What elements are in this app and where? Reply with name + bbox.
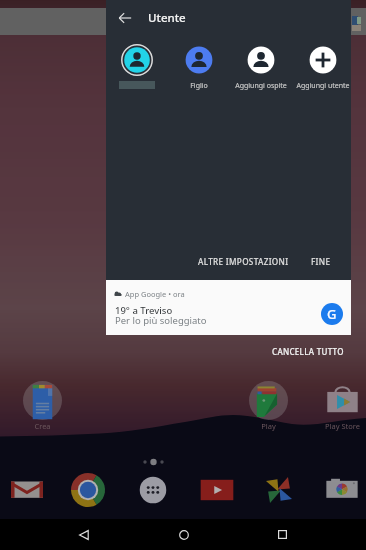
button[interactable]: ALTRE IMPOSTAZIONI	[192, 251, 295, 272]
button[interactable]: YouTube	[198, 471, 236, 509]
button[interactable]: CANCELLA TUTTO	[268, 343, 348, 360]
button[interactable]: Play Store	[316, 381, 366, 431]
button[interactable]: Recents	[267, 519, 298, 550]
staticText: Play Store	[325, 421, 360, 431]
button[interactable]: Crea	[16, 381, 68, 431]
staticText: G	[327, 305, 337, 323]
staticText: FINE	[311, 256, 331, 267]
button[interactable]: Figlio	[170, 44, 228, 91]
button[interactable]: FINE	[305, 251, 337, 272]
button[interactable]: Play	[242, 381, 294, 431]
button[interactable]: Camera	[323, 471, 361, 509]
button[interactable]: Back	[68, 519, 99, 550]
button[interactable]: Aggiungi utente	[294, 44, 352, 91]
staticText: 19° a Treviso	[115, 304, 173, 317]
staticText: CANCELLA TUTTO	[272, 346, 344, 357]
button[interactable]: Aggiungi ospite	[232, 44, 290, 91]
staticText: Crea	[34, 421, 51, 431]
staticText: Utente	[148, 10, 186, 26]
staticText: Aggiungi utente	[296, 81, 350, 91]
button[interactable]: Back	[111, 4, 139, 32]
button[interactable]: All apps	[134, 471, 172, 509]
staticText: App Google • ora	[125, 289, 185, 299]
staticText: Play	[261, 421, 276, 431]
button[interactable]: G	[321, 303, 343, 325]
button[interactable]: Home	[168, 519, 199, 550]
staticText: Figlio	[190, 81, 208, 91]
button[interactable]: Photos	[260, 471, 298, 509]
staticText: ALTRE IMPOSTAZIONI	[198, 256, 289, 267]
button[interactable]	[108, 44, 166, 89]
button[interactable]: Gmail	[8, 471, 46, 509]
staticText: Per lo più soleggiato	[115, 314, 207, 327]
staticText: Aggiungi ospite	[235, 81, 287, 91]
button[interactable]: Chrome	[69, 471, 107, 509]
